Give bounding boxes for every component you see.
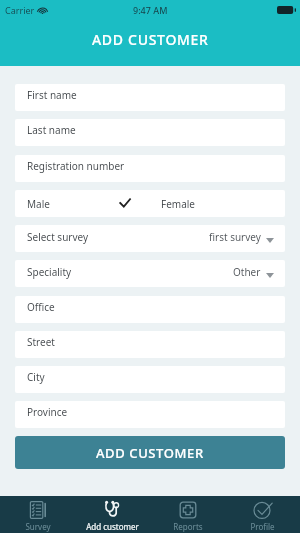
button[interactable]: Office xyxy=(15,296,285,323)
button[interactable]: Male xyxy=(15,190,119,217)
staticText: 9:47 AM xyxy=(133,4,168,16)
staticText: Speciality xyxy=(27,265,72,279)
other: Profile xyxy=(253,500,273,520)
staticText: City xyxy=(27,370,45,384)
staticText: Survey xyxy=(25,521,51,532)
other: Add customer xyxy=(103,500,123,520)
button[interactable]: Survey xyxy=(0,496,75,533)
staticText: Registration number xyxy=(27,159,125,173)
button[interactable]: ADD CUSTOMER xyxy=(15,436,285,469)
button[interactable]: Select survey xyxy=(15,225,285,252)
staticText: Male xyxy=(27,197,50,211)
staticText: ADD CUSTOMER xyxy=(96,444,204,462)
staticText: Street xyxy=(27,335,55,349)
staticText: Female xyxy=(161,197,196,211)
button[interactable]: Last name xyxy=(15,119,285,146)
staticText: Other xyxy=(233,265,261,279)
button[interactable]: First name xyxy=(15,84,285,111)
button[interactable]: Add customer xyxy=(75,496,150,533)
staticText: Reports xyxy=(173,521,203,532)
button[interactable]: Reports xyxy=(150,496,225,533)
button[interactable]: Street xyxy=(15,331,285,358)
button[interactable]: City xyxy=(15,366,285,393)
staticText: Add customer xyxy=(86,521,139,532)
button[interactable]: Profile xyxy=(225,496,300,533)
staticText: Carrier xyxy=(5,4,35,16)
other: Survey xyxy=(28,500,48,520)
staticText: Office xyxy=(27,300,55,314)
staticText: first survey xyxy=(209,230,261,244)
other: Reports xyxy=(178,500,198,520)
staticText: ADD CUSTOMER xyxy=(92,30,209,49)
staticText: First name xyxy=(27,88,77,102)
staticText: Province xyxy=(27,405,68,419)
staticText: Profile xyxy=(250,521,275,532)
button[interactable]: Female xyxy=(131,190,285,217)
staticText: Select survey xyxy=(27,230,89,244)
button[interactable]: Registration number xyxy=(15,155,285,182)
staticText: Last name xyxy=(27,123,76,137)
button[interactable]: Speciality xyxy=(15,260,285,287)
button[interactable]: Province xyxy=(15,401,285,428)
